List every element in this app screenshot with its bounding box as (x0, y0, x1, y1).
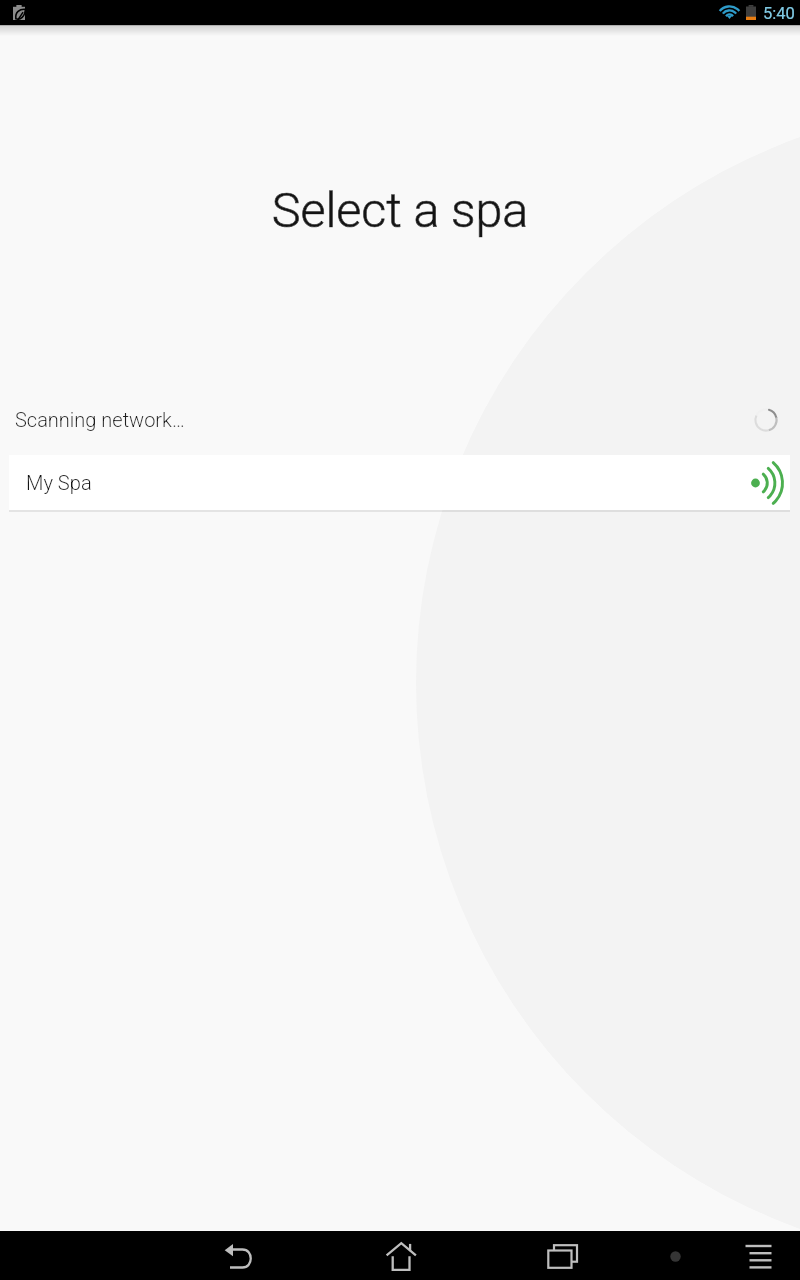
button[interactable]: My Spa (9, 455, 790, 510)
staticText: Scanning network… (15, 408, 185, 431)
button[interactable]: Menu (722, 1231, 794, 1280)
button[interactable]: Back (202, 1231, 274, 1280)
other: Signal strength (751, 462, 785, 504)
other: Wi-Fi (719, 4, 740, 19)
other: Battery (746, 5, 756, 20)
staticText: 5:40 (763, 4, 795, 23)
button[interactable]: Home (364, 1231, 436, 1280)
staticText: Select a spa (0, 182, 800, 239)
other: Battery saver on (13, 5, 25, 20)
staticText: My Spa (26, 471, 92, 495)
button[interactable]: Recent apps (526, 1231, 598, 1280)
button[interactable]: Google Assistant (639, 1231, 711, 1280)
staticText: Select a spa (0, 182, 800, 239)
